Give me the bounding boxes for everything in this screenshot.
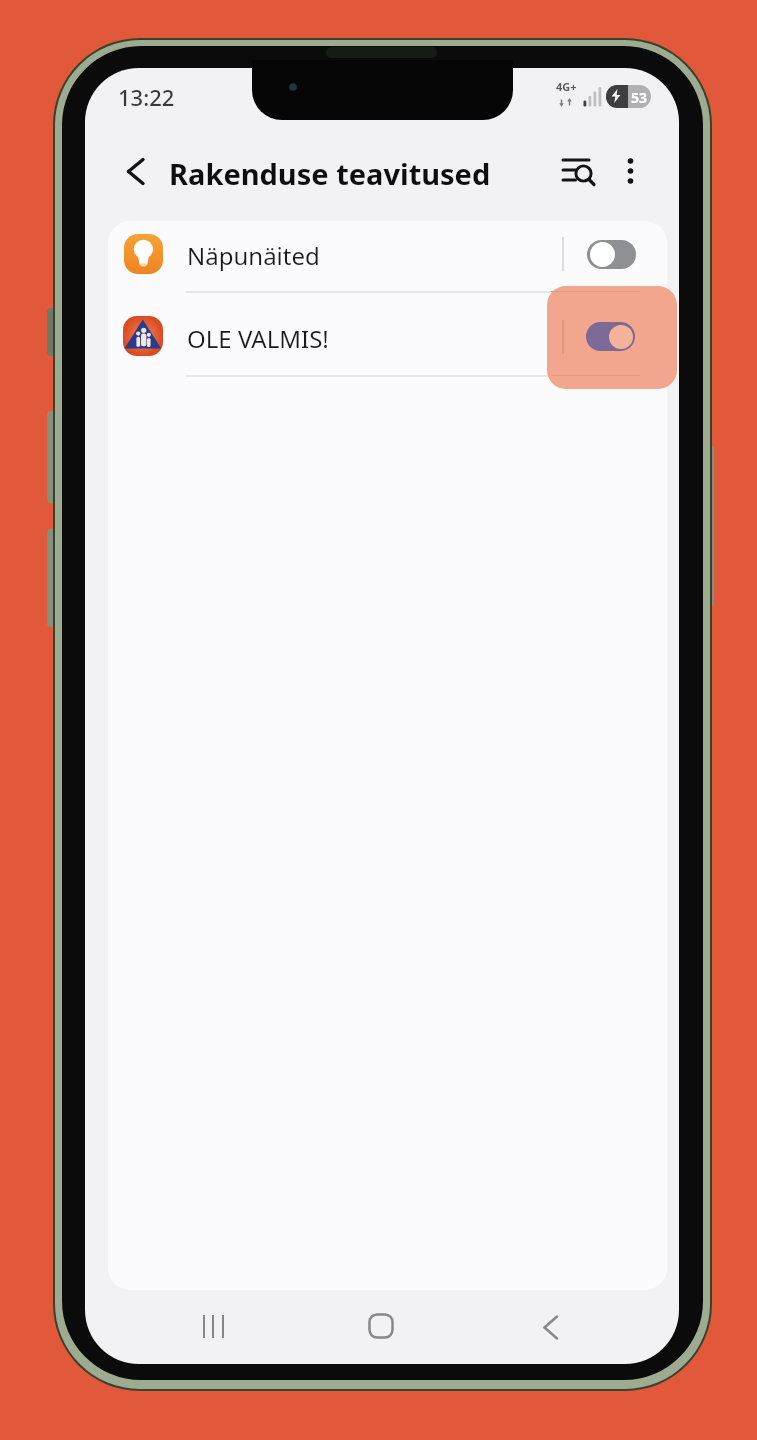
- button[interactable]: [587, 240, 636, 269]
- staticText: Rakenduse teavitused: [169, 154, 491, 193]
- button[interactable]: [516, 1300, 584, 1355]
- button[interactable]: [546, 147, 598, 195]
- staticText: 4G+: [556, 79, 577, 94]
- staticText: Näpunäited: [187, 239, 320, 272]
- staticText: OLE VALMIS!: [187, 322, 329, 355]
- button[interactable]: [586, 322, 635, 351]
- staticText: 53: [631, 88, 648, 107]
- button[interactable]: [610, 147, 654, 195]
- staticText: 13:22: [118, 82, 175, 112]
- button[interactable]: [346, 1300, 416, 1355]
- button[interactable]: [108, 221, 667, 291]
- button[interactable]: [112, 145, 160, 195]
- button[interactable]: [108, 292, 667, 376]
- button[interactable]: [180, 1300, 248, 1355]
